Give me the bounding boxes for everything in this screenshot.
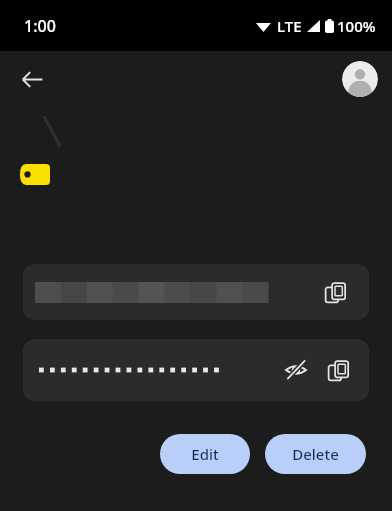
button[interactable]: Delete — [265, 434, 366, 474]
staticText: Delete — [292, 444, 339, 464]
button[interactable]: Copy username — [23, 264, 369, 320]
button[interactable]: Hide password — [23, 339, 369, 401]
staticText: 1:00 — [24, 15, 56, 37]
button[interactable]: Copy username — [315, 272, 355, 312]
button[interactable]: Account — [342, 61, 378, 97]
button[interactable]: Back — [8, 55, 56, 103]
staticText: 100% — [337, 16, 376, 36]
staticText: Edit — [191, 444, 219, 464]
staticText: LTE — [277, 16, 302, 36]
button[interactable]: Copy password — [317, 349, 359, 391]
button[interactable]: Edit — [160, 434, 250, 474]
button[interactable]: Hide password — [275, 349, 317, 391]
